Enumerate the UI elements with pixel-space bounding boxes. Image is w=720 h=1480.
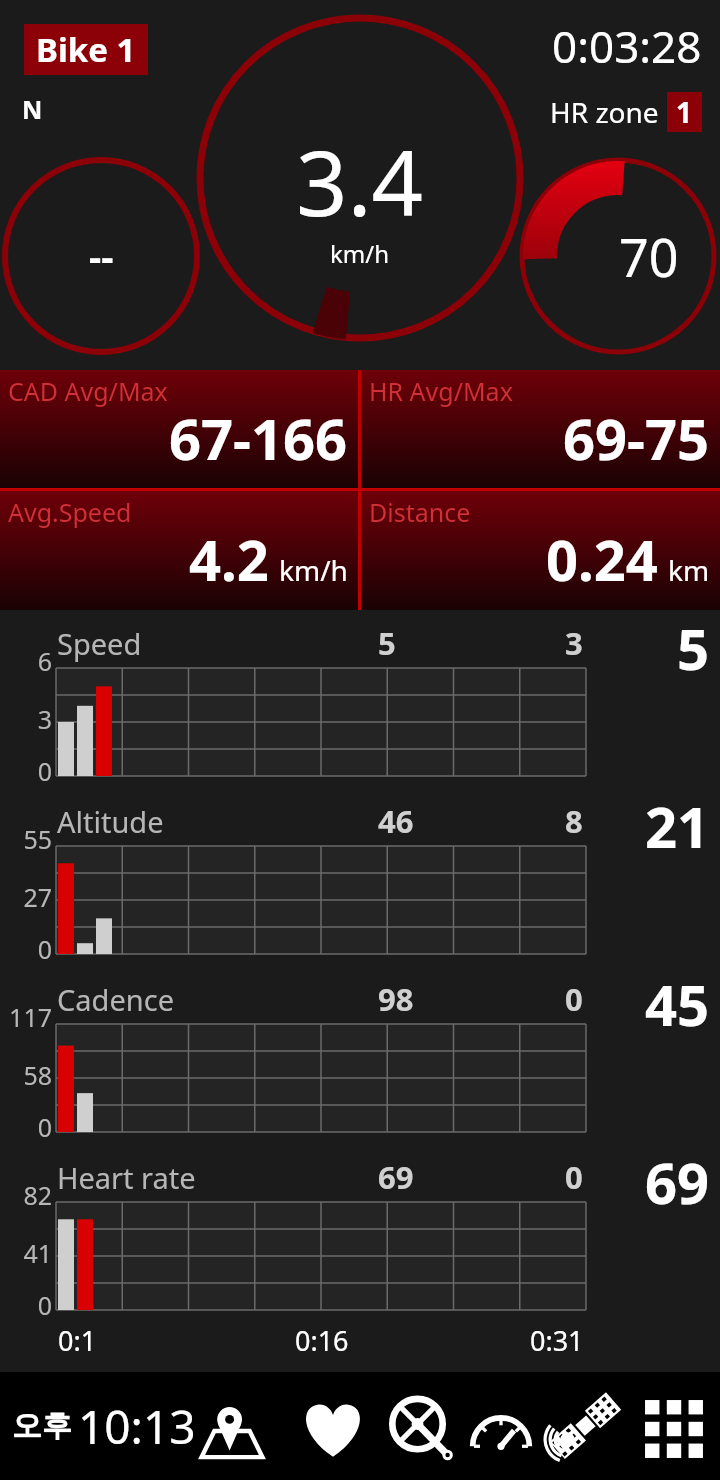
button[interactable]: Altitude [0,788,720,966]
staticText: 0:03:28 [552,16,702,76]
staticText: 58 [23,1058,52,1092]
staticText: 0.24 [546,521,658,597]
button[interactable]: Distance [361,491,720,610]
staticText: 70 [619,221,679,292]
staticText: 오후 [12,1407,72,1445]
staticText: 98 [378,978,414,1020]
staticText: CAD Avg/Max [8,374,168,408]
button[interactable]: CAD Avg/Max [0,370,358,488]
staticText: HR zone [550,93,659,131]
staticText: 5 [378,622,396,664]
staticText: Speed [57,624,142,663]
staticText: 0:31 [530,1322,584,1359]
staticText: Avg.Speed [8,495,132,529]
staticText: N [22,92,43,126]
staticText: km/h [279,551,348,589]
staticText: Altitude [57,802,164,841]
staticText: 69 [378,1156,414,1198]
staticText: 0:1 [58,1322,97,1359]
staticText: 0 [37,754,52,788]
staticText: 4.2 [189,521,269,597]
staticText: 1 [676,93,693,131]
button[interactable]: Map [192,1402,272,1460]
staticText: 21 [645,788,710,864]
staticText: Distance [369,495,471,529]
staticText: HR Avg/Max [369,374,513,408]
button[interactable]: GPS [548,1396,620,1462]
staticText: 27 [23,880,52,914]
button[interactable]: Heart rate [0,1144,720,1322]
staticText: 69 [645,1144,710,1220]
staticText: km [668,551,710,589]
staticText: 55 [23,822,52,856]
button[interactable]: Bike 1 [24,24,148,75]
staticText: 0 [565,1156,583,1198]
staticText: 3 [37,702,52,736]
button[interactable]: HR Avg/Max [361,370,720,488]
staticText: 0 [37,932,52,966]
staticText: 0 [37,1288,52,1322]
button[interactable]: Menu [642,1400,706,1458]
button[interactable]: Avg.Speed [0,491,358,610]
staticText: 5 [677,610,710,686]
staticText: km/h [330,237,390,270]
staticText: 6 [37,644,52,678]
staticText: 0 [37,1110,52,1144]
staticText: 0 [565,978,583,1020]
staticText: 3 [565,622,583,664]
staticText: Cadence [57,980,174,1019]
staticText: 41 [23,1236,52,1270]
button[interactable]: Cadence [0,966,720,1144]
staticText: 0:16 [295,1322,349,1359]
button[interactable]: Speed sensor [468,1402,534,1456]
staticText: 82 [23,1178,52,1212]
button[interactable]: Heart rate sensor [298,1400,368,1458]
staticText: -- [89,230,114,282]
staticText: 117 [9,1000,52,1034]
button[interactable]: Speed [0,610,720,788]
staticText: 67-166 [169,400,348,476]
staticText: Bike 1 [36,27,136,72]
staticText: 69-75 [563,400,710,476]
staticText: 46 [378,800,414,842]
staticText: 10:13 [78,1395,196,1458]
staticText: Heart rate [57,1158,196,1197]
button[interactable]: Cadence sensor [386,1398,456,1460]
staticText: 8 [565,800,583,842]
staticText: 45 [645,966,710,1042]
staticText: 3.4 [296,120,424,243]
